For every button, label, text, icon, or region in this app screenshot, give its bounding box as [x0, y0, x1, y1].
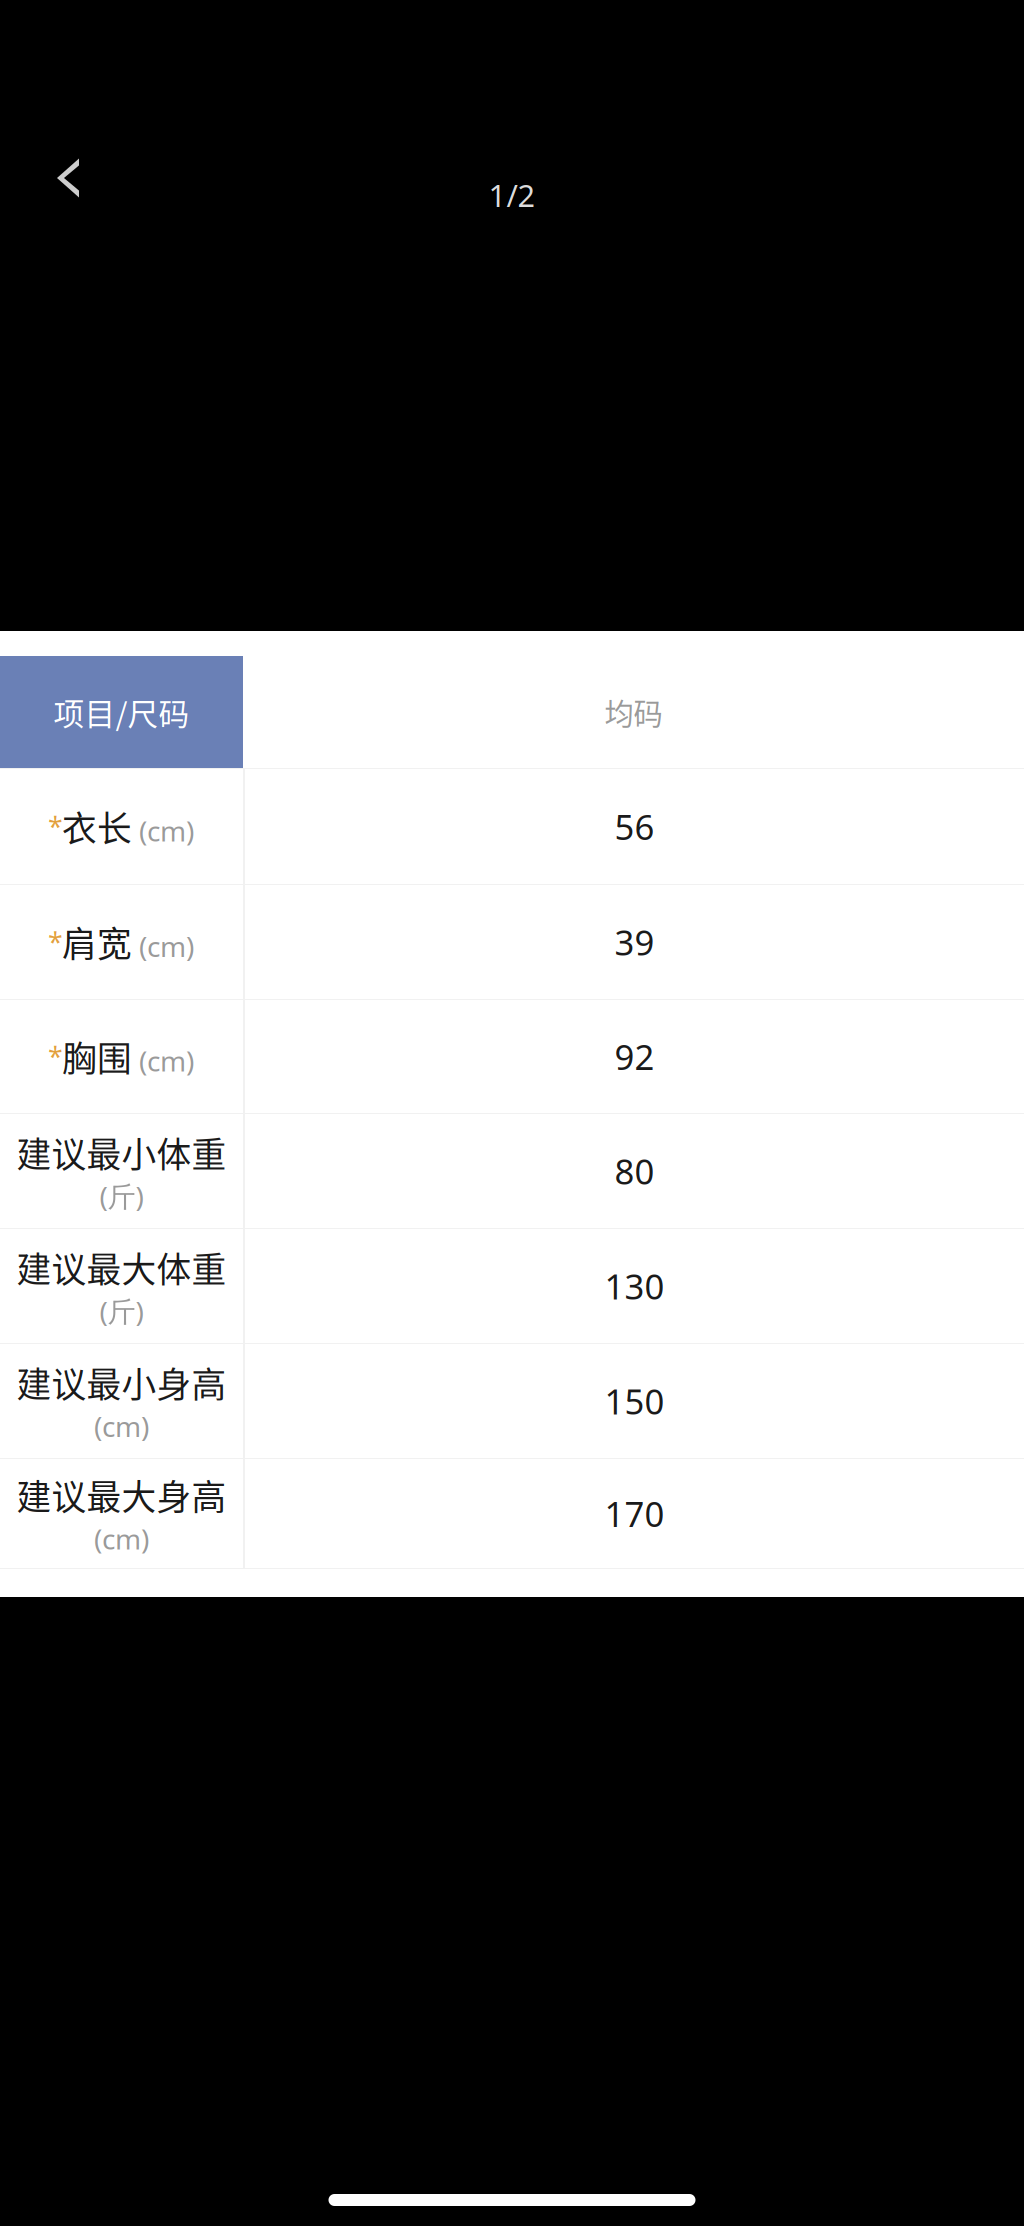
staticText: 衣长: [62, 801, 132, 852]
button[interactable]: Back: [24, 152, 96, 204]
staticText: *: [48, 809, 63, 844]
staticText: 肩宽: [62, 917, 132, 967]
staticText: 项目/尺码: [53, 690, 189, 734]
staticText: 56: [614, 803, 654, 849]
staticText: (cm): [132, 1042, 194, 1079]
staticText: 胸围: [62, 1031, 132, 1082]
staticText: 建议最大体重: [16, 1242, 226, 1292]
staticText: 92: [614, 1033, 654, 1079]
staticText: 均码: [604, 691, 662, 733]
staticText: 建议最小身高: [16, 1357, 226, 1407]
staticText: (cm): [94, 1407, 149, 1445]
staticText: *: [48, 924, 63, 960]
staticText: 80: [614, 1148, 654, 1194]
staticText: (cm): [132, 812, 194, 849]
staticText: (斤): [99, 1292, 143, 1330]
staticText: *: [48, 1039, 63, 1074]
staticText: 建议最大身高: [16, 1470, 226, 1520]
staticText: 建议最小体重: [16, 1127, 226, 1177]
staticText: (cm): [132, 928, 194, 965]
staticText: 150: [604, 1378, 664, 1424]
staticText: 130: [604, 1263, 664, 1309]
staticText: (斤): [99, 1177, 143, 1215]
staticText: 39: [614, 919, 654, 965]
staticText: 1/2: [488, 175, 535, 215]
staticText: 170: [604, 1490, 664, 1536]
button[interactable]: Size chart, image 1 of 2: [0, 631, 1024, 1597]
staticText: (cm): [94, 1520, 149, 1557]
